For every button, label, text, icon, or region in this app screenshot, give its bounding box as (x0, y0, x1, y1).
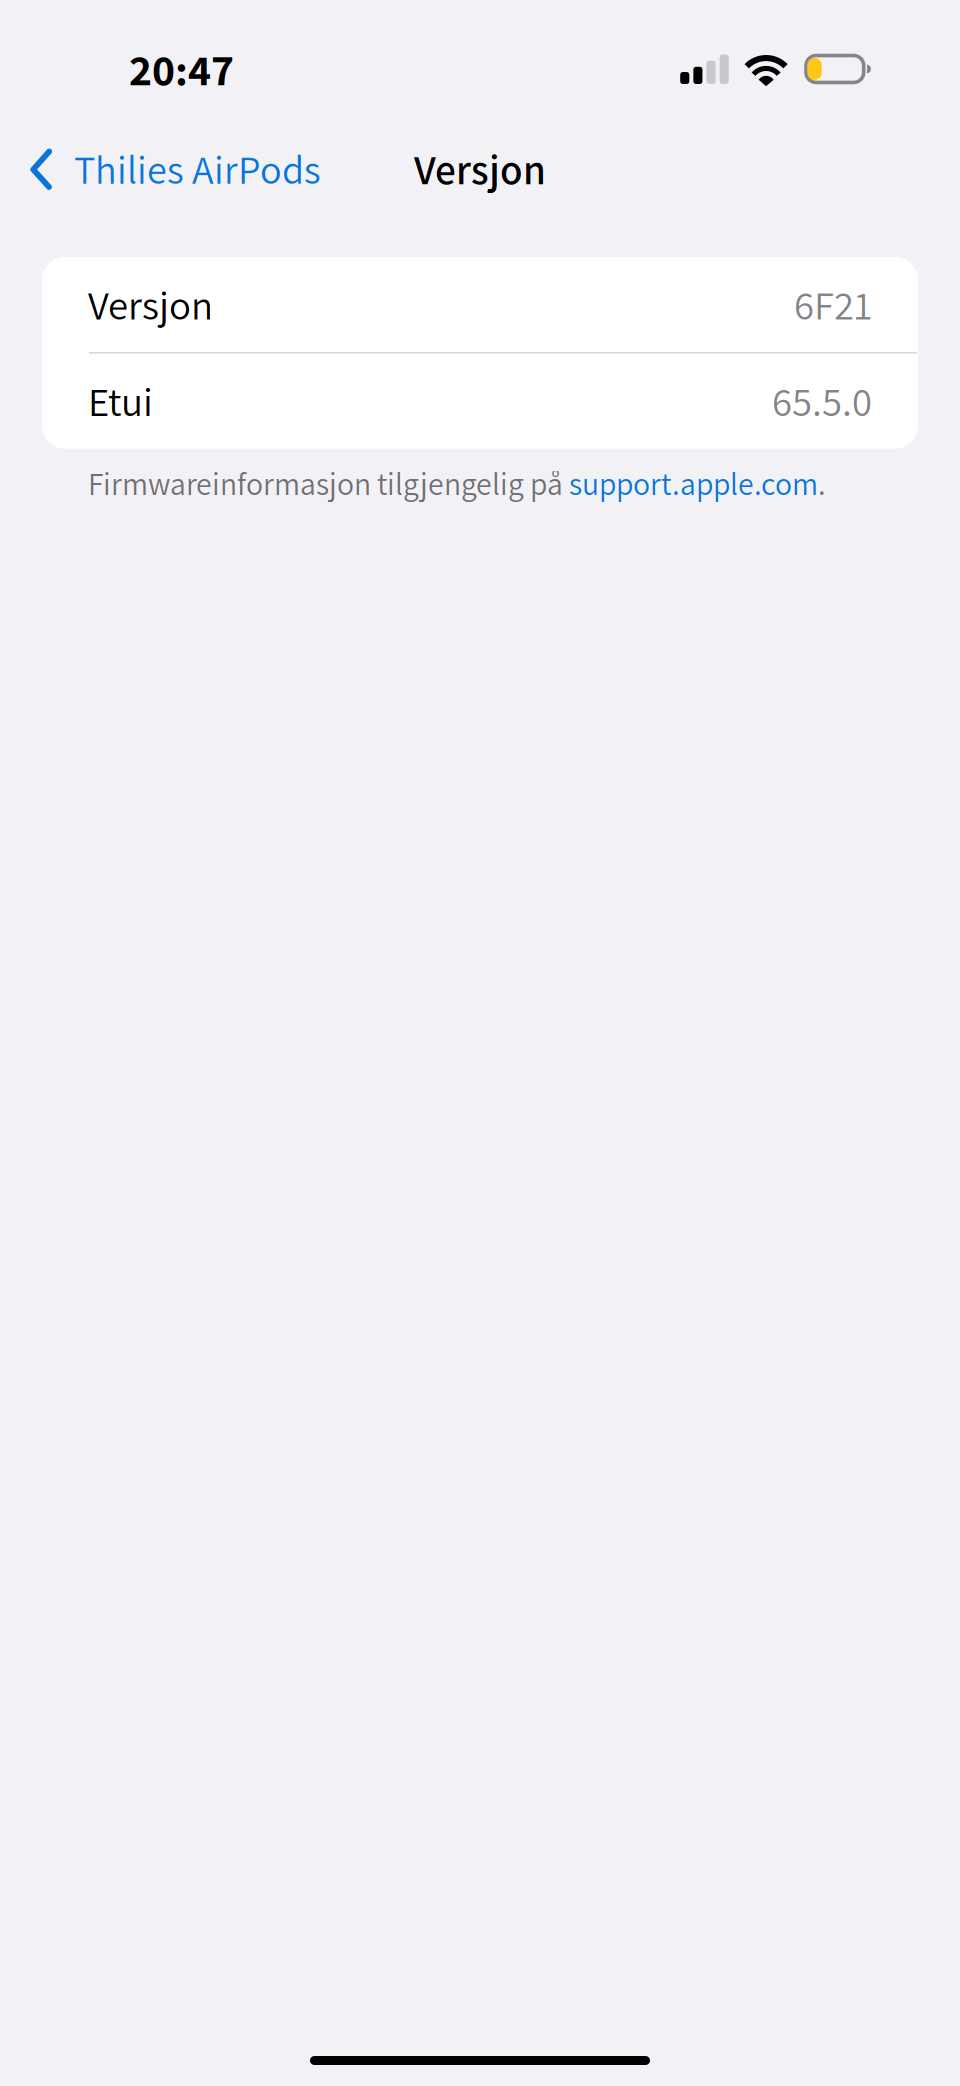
staticText: Versjon (88, 278, 213, 331)
staticText: Thilies AirPods (74, 143, 321, 195)
staticText: Firmwareinformasjon tilgjengelig på (88, 463, 569, 504)
button[interactable]: Back to Thilies AirPods (0, 124, 337, 214)
staticText: support.apple.com (569, 463, 818, 504)
staticText: 20:47 (129, 40, 234, 98)
staticText: Versjon (414, 142, 546, 196)
staticText: 6F21 (794, 278, 872, 331)
staticText: Etui (88, 375, 153, 428)
staticText: 65.5.0 (772, 375, 872, 428)
button[interactable]: support.apple.com (569, 463, 818, 504)
staticText: . (818, 463, 826, 504)
